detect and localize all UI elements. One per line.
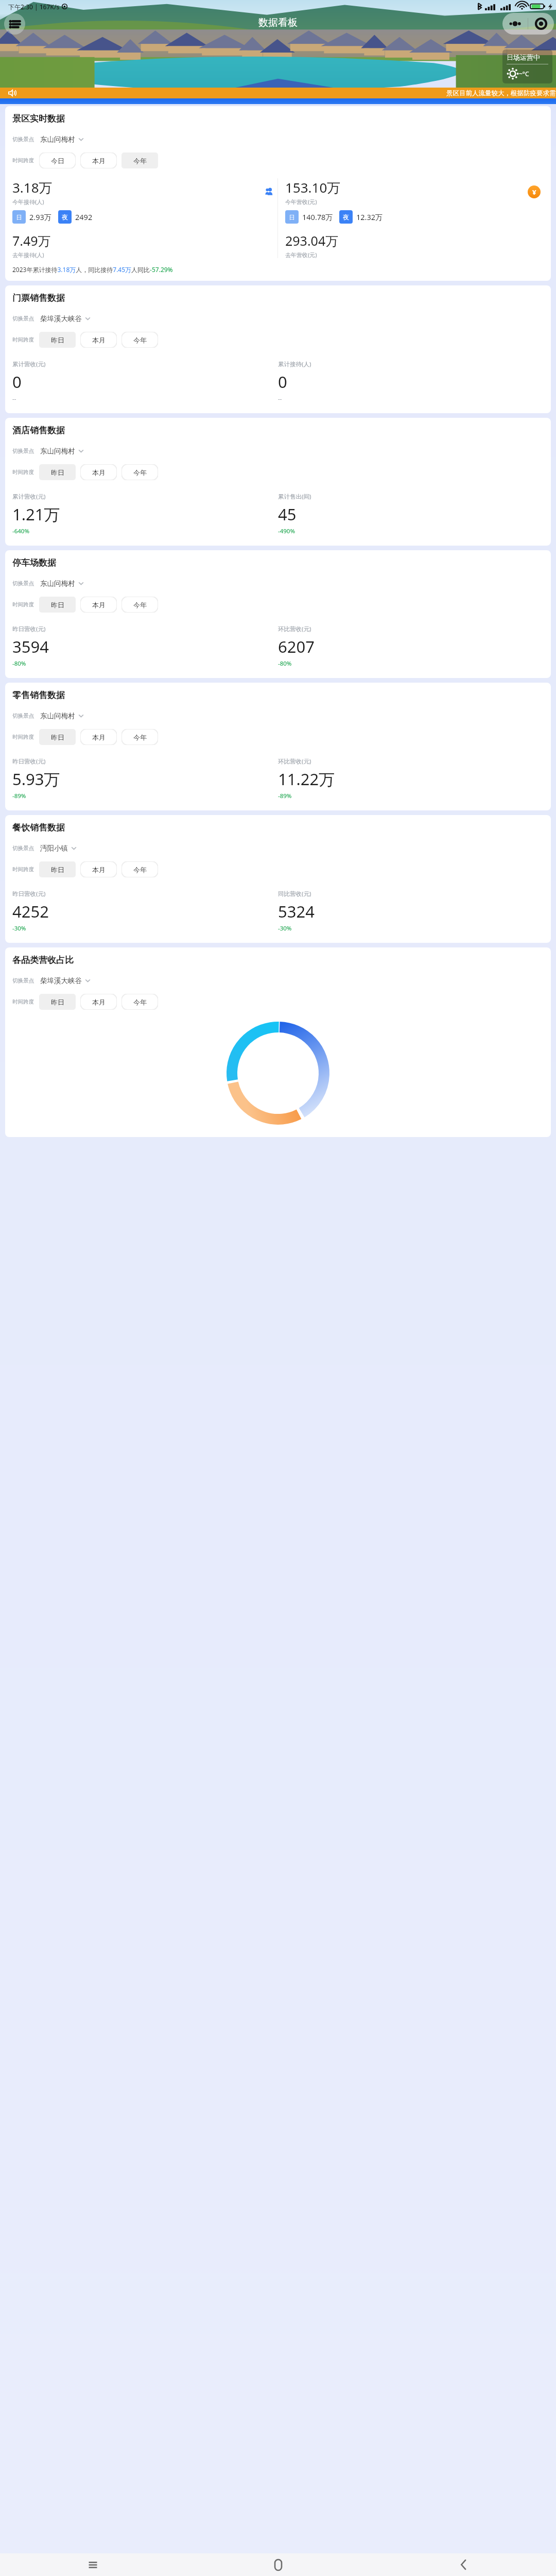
- staticText: 5.93万: [12, 768, 60, 790]
- staticText: 餐饮销售数据: [12, 822, 65, 833]
- staticText: 2492: [75, 212, 93, 222]
- staticText: 5324: [278, 901, 315, 922]
- staticText: ~°C: [519, 70, 529, 78]
- button[interactable]: 今年: [121, 994, 158, 1010]
- staticText: 柴埠溪大峡谷: [40, 976, 82, 985]
- button[interactable]: 今年: [121, 464, 158, 480]
- button[interactable]: 昨日: [39, 597, 76, 613]
- staticText: 下午2:30 | 167K/s: [8, 3, 60, 11]
- staticText: 去年接待(人): [12, 251, 44, 258]
- staticText: 时间跨度: [12, 734, 34, 740]
- button[interactable]: 昨日: [39, 464, 76, 480]
- button[interactable]: 今年: [121, 861, 158, 877]
- staticText: 景区实时数据: [12, 113, 65, 124]
- staticText: 2.93万: [29, 212, 52, 222]
- staticText: 昨日: [51, 336, 64, 344]
- button[interactable]: 今日: [39, 152, 76, 168]
- staticText: 东山问梅村: [40, 579, 75, 588]
- staticText: -80%: [12, 659, 26, 668]
- staticText: 昨日: [51, 468, 64, 477]
- button[interactable]: 切换景点: [12, 844, 77, 853]
- button[interactable]: 日场运营中: [502, 49, 552, 83]
- staticText: 本月: [92, 468, 106, 477]
- button[interactable]: 切换景点: [12, 314, 91, 323]
- button[interactable]: 本月: [80, 729, 117, 745]
- button[interactable]: 返回: [371, 2553, 556, 2576]
- staticText: -80%: [278, 659, 292, 668]
- staticText: 今年: [133, 601, 147, 609]
- staticText: 累计营收(元): [12, 493, 46, 501]
- staticText: 今年接待(人): [12, 198, 44, 206]
- button[interactable]: 切换景点: [12, 711, 84, 720]
- button[interactable]: 昨日: [39, 332, 76, 348]
- button[interactable]: 今年: [121, 729, 158, 745]
- button[interactable]: 本月: [80, 861, 117, 877]
- staticText: 切换景点: [12, 315, 34, 322]
- staticText: -640%: [12, 527, 29, 535]
- staticText: 0: [12, 371, 22, 393]
- button[interactable]: 今年: [121, 332, 158, 348]
- button[interactable]: 本月: [80, 332, 117, 348]
- staticText: 切换景点: [12, 136, 34, 143]
- staticText: 本月: [92, 866, 106, 874]
- staticText: -89%: [12, 792, 26, 800]
- button[interactable]: 切换景点: [12, 976, 91, 985]
- staticText: 日: [16, 213, 22, 221]
- staticText: 停车场数据: [12, 557, 56, 568]
- staticText: 153.10万: [285, 178, 341, 197]
- button[interactable]: 主屏幕: [185, 2553, 371, 2576]
- button[interactable]: 更多: [502, 13, 528, 35]
- staticText: 沔阳小镇: [40, 844, 68, 853]
- staticText: 东山问梅村: [40, 447, 75, 455]
- staticText: 夜: [343, 213, 349, 221]
- button[interactable]: 本月: [80, 597, 117, 613]
- button[interactable]: 切换景点: [12, 579, 84, 588]
- staticText: 140.78万: [302, 212, 333, 222]
- staticText: 日: [289, 213, 295, 221]
- staticText: 6207: [278, 636, 315, 657]
- button[interactable]: 最近任务: [0, 2553, 185, 2576]
- staticText: 昨日: [51, 601, 64, 609]
- staticText: 数据看板: [258, 16, 298, 29]
- button[interactable]: 切换景点: [12, 447, 84, 455]
- button[interactable]: 今年: [121, 597, 158, 613]
- button[interactable]: 昨日: [39, 729, 76, 745]
- staticText: 夜: [62, 213, 68, 221]
- staticText: 293.04万: [285, 232, 339, 249]
- button[interactable]: 本月: [80, 464, 117, 480]
- button[interactable]: 切换景点: [12, 135, 84, 144]
- staticText: 累计接待(人): [278, 360, 311, 368]
- staticText: 昨日营收(元): [12, 757, 46, 766]
- staticText: 日场运营中: [507, 53, 540, 61]
- button[interactable]: 本月: [80, 152, 117, 168]
- button[interactable]: 关闭: [528, 13, 554, 35]
- staticText: 本月: [92, 336, 106, 344]
- button[interactable]: 菜单: [4, 13, 25, 35]
- staticText: 11.22万: [278, 768, 335, 790]
- staticText: 本月: [92, 733, 106, 741]
- button[interactable]: 昨日: [39, 861, 76, 877]
- staticText: 切换景点: [12, 845, 34, 852]
- staticText: 45: [278, 503, 297, 525]
- button[interactable]: 今年: [121, 152, 158, 168]
- staticText: 时间跨度: [12, 469, 34, 476]
- staticText: 1.21万: [12, 503, 60, 525]
- staticText: 同比营收(元): [278, 890, 311, 898]
- staticText: -30%: [278, 924, 292, 933]
- button[interactable]: 昨日: [39, 994, 76, 1010]
- staticText: 今年: [133, 157, 147, 165]
- button[interactable]: 本月: [80, 994, 117, 1010]
- staticText: 今年: [133, 733, 147, 741]
- staticText: 切换景点: [12, 580, 34, 587]
- staticText: 2023年累计接待3.18万人，同比接待7.45万人同比-57.29%: [12, 265, 173, 274]
- staticText: 本月: [92, 157, 106, 165]
- staticText: 本月: [92, 998, 106, 1006]
- button[interactable]: 景区目前人流量较大，根据防疫要求需: [0, 88, 556, 98]
- staticText: 累计营收(元): [12, 360, 46, 368]
- staticText: 切换景点: [12, 977, 34, 984]
- staticText: 3.18万: [12, 178, 53, 197]
- staticText: 昨日: [51, 733, 64, 741]
- staticText: 各品类营收占比: [12, 955, 74, 965]
- staticText: --: [278, 395, 282, 403]
- staticText: 时间跨度: [12, 601, 34, 608]
